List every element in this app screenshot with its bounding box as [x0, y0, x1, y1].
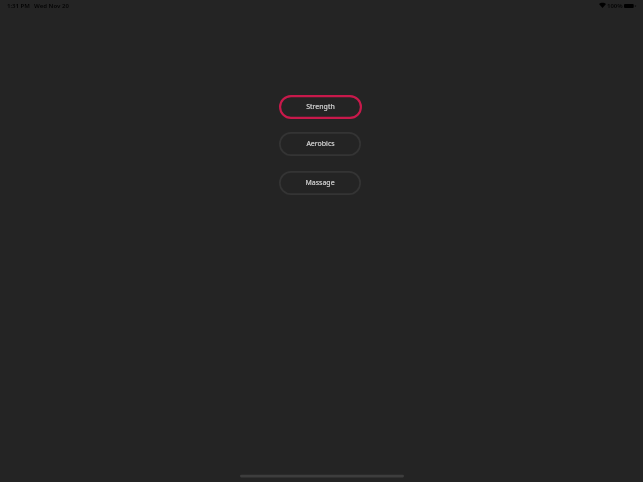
other: Battery 100 percent — [624, 4, 636, 8]
staticText: Strength — [306, 102, 335, 112]
button[interactable]: Strength — [279, 95, 362, 119]
staticText: 100% — [607, 2, 623, 10]
staticText: Wed Nov 20 — [34, 2, 69, 10]
button[interactable]: Aerobics — [279, 132, 361, 156]
staticText: Aerobics — [306, 139, 335, 149]
button[interactable]: Massage — [279, 171, 361, 195]
staticText: 1:31 PM — [7, 2, 30, 10]
other: Wi-Fi connected — [599, 3, 606, 8]
staticText: Massage — [305, 178, 335, 188]
